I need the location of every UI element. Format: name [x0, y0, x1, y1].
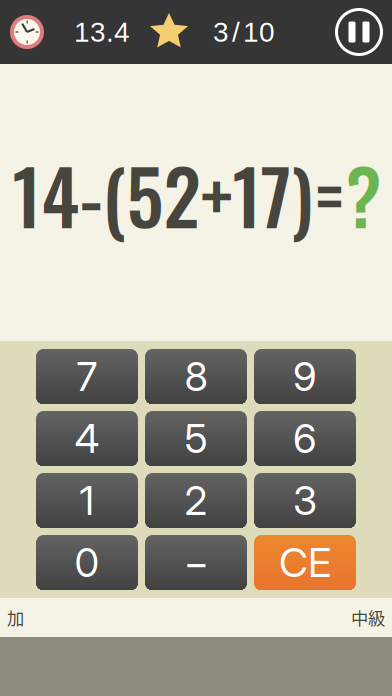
button[interactable]: 2: [145, 473, 246, 528]
staticText: 5: [184, 414, 207, 463]
staticText: 8: [184, 352, 207, 401]
staticText: 4: [74, 414, 99, 463]
staticText: ?: [345, 139, 381, 250]
button[interactable]: 9: [254, 349, 355, 404]
button[interactable]: CE: [254, 535, 355, 590]
button[interactable]: 3: [254, 473, 355, 528]
staticText: 3: [293, 476, 317, 525]
staticText: −: [183, 538, 208, 587]
button[interactable]: 5: [145, 411, 246, 466]
staticText: 加: [7, 605, 24, 630]
staticText: 0: [74, 538, 99, 587]
staticText: /: [232, 16, 240, 48]
staticText: 13.4: [74, 16, 130, 48]
staticText: 10: [243, 16, 275, 48]
button[interactable]: Pause: [331, 4, 387, 60]
staticText: 9: [293, 352, 317, 401]
button[interactable]: 0: [36, 535, 137, 590]
button[interactable]: 4: [36, 411, 137, 466]
staticText: 中級: [351, 605, 385, 630]
staticText: 1: [79, 476, 94, 525]
button[interactable]: 8: [145, 349, 246, 404]
staticText: 3: [213, 16, 229, 48]
staticText: 6: [293, 414, 317, 463]
button[interactable]: −: [145, 535, 246, 590]
button[interactable]: 6: [254, 411, 355, 466]
staticText: 7: [76, 352, 97, 401]
staticText: 14-(52+17)=: [12, 139, 345, 250]
staticText: 2: [184, 476, 207, 525]
button[interactable]: 7: [36, 349, 137, 404]
button[interactable]: 1: [36, 473, 137, 528]
staticText: CE: [279, 538, 331, 587]
